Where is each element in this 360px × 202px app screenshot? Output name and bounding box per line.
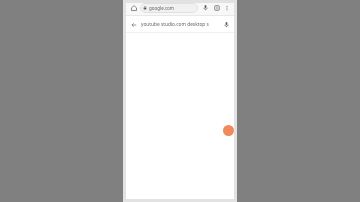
staticText: youtube studio.com desktop s: [141, 21, 220, 28]
button[interactable]: More options: [222, 3, 232, 13]
button[interactable]: Home: [128, 2, 139, 13]
button[interactable]: google.com: [140, 3, 198, 13]
button[interactable]: Voice input: [221, 19, 232, 30]
button[interactable]: Voice search: [200, 2, 211, 13]
staticText: google.com: [149, 5, 174, 11]
button[interactable]: Scroll handle: [223, 125, 234, 136]
button[interactable]: Back: [126, 16, 234, 32]
button[interactable]: Back: [128, 19, 139, 30]
button[interactable]: Tab switcher: [211, 2, 222, 13]
